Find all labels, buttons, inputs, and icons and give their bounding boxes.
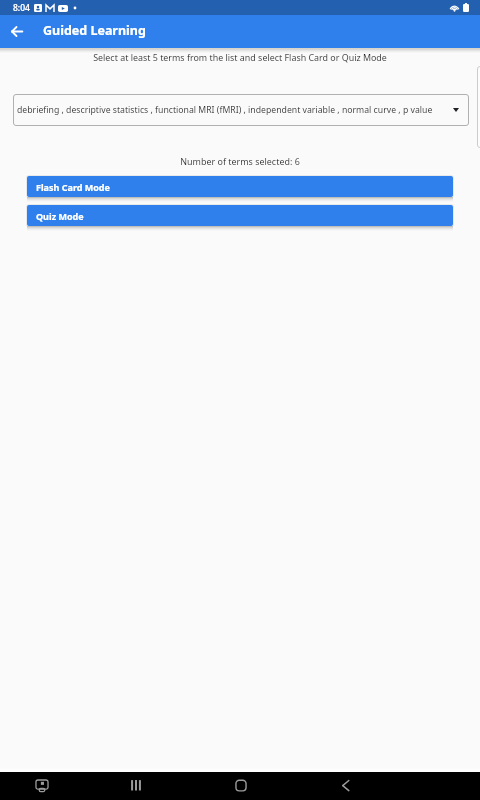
button[interactable]: Quiz Mode (27, 205, 453, 226)
button[interactable]: debriefing , descriptive statistics , fu… (13, 94, 469, 126)
button[interactable]: Flash Card Mode (27, 176, 453, 197)
staticText: Number of terms selected: 6 (0, 155, 480, 167)
button[interactable]: Home (224, 772, 258, 800)
staticText: Guided Learning (43, 22, 146, 39)
button[interactable]: Back (329, 772, 363, 800)
staticText: Flash Card Mode (36, 181, 110, 193)
button[interactable]: Recents (119, 772, 153, 800)
staticText: debriefing , descriptive statistics , fu… (17, 104, 453, 116)
button[interactable]: Screenshot (25, 772, 59, 800)
button[interactable]: Back (4, 19, 30, 45)
staticText: 8:04 (13, 2, 30, 14)
staticText: Select at least 5 terms from the list an… (0, 51, 480, 63)
staticText: Quiz Mode (36, 210, 84, 222)
